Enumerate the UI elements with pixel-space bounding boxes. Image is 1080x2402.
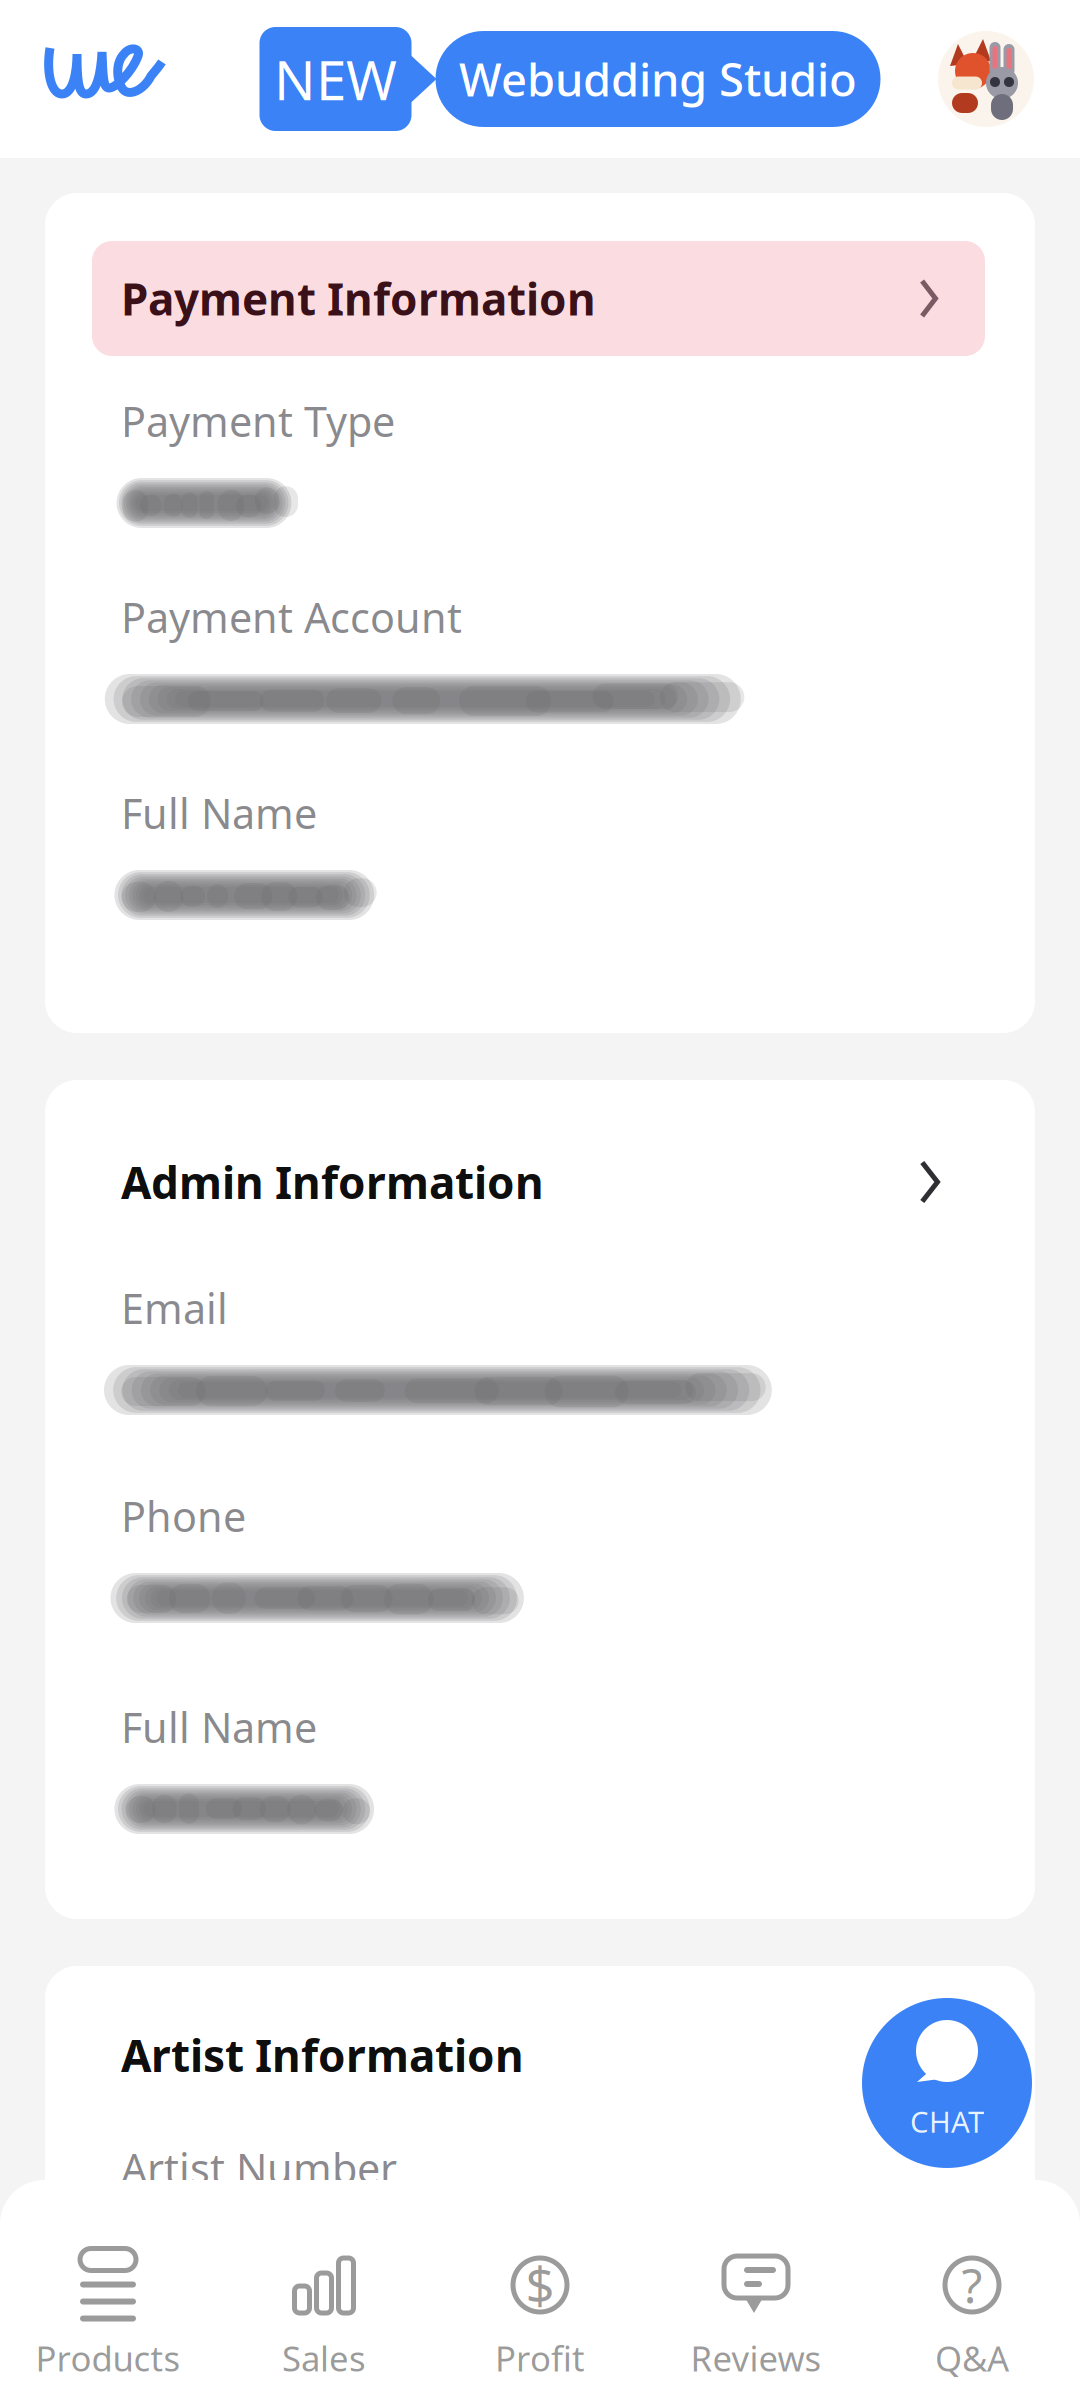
button[interactable]: Artist Information <box>121 2027 958 2083</box>
button[interactable]: $ <box>432 2257 648 2381</box>
button[interactable]: Profile <box>938 31 1034 127</box>
staticText: Webudding Studio <box>459 49 857 109</box>
staticText: Full Name <box>121 786 317 840</box>
button[interactable]: We home <box>46 31 176 127</box>
staticText: ? <box>961 2253 982 2317</box>
staticText: Q&A <box>935 2335 1009 2381</box>
button[interactable]: Reviews <box>648 2257 864 2381</box>
staticText: Phone <box>121 1489 246 1543</box>
staticText: Reviews <box>690 2335 821 2381</box>
button[interactable]: Admin Information <box>121 1154 958 1210</box>
staticText: Sales <box>282 2335 366 2381</box>
staticText: Artist Number <box>121 2141 397 2195</box>
staticText: Admin Information <box>121 1153 544 1211</box>
staticText: Payment Type <box>121 394 395 448</box>
staticText: Payment Account <box>121 590 462 644</box>
button[interactable]: Products <box>0 2257 216 2381</box>
staticText: $ <box>525 2251 554 2319</box>
button[interactable]: Sales <box>216 2257 432 2381</box>
button[interactable]: NEW <box>259 27 411 131</box>
button[interactable]: Payment Information <box>92 241 985 356</box>
staticText: Email <box>121 1281 228 1335</box>
staticText: Full Name <box>121 1700 317 1754</box>
staticText: Profit <box>495 2335 585 2381</box>
staticText: Products <box>35 2335 180 2381</box>
staticText: CHAT <box>910 2102 984 2141</box>
staticText: NEW <box>274 43 397 115</box>
staticText: Artist Information <box>121 2026 524 2084</box>
button[interactable]: ? <box>864 2257 1080 2381</box>
staticText: Payment Information <box>121 269 596 328</box>
button[interactable]: Chat <box>862 1998 1032 2168</box>
button[interactable]: Webudding Studio <box>435 31 880 127</box>
